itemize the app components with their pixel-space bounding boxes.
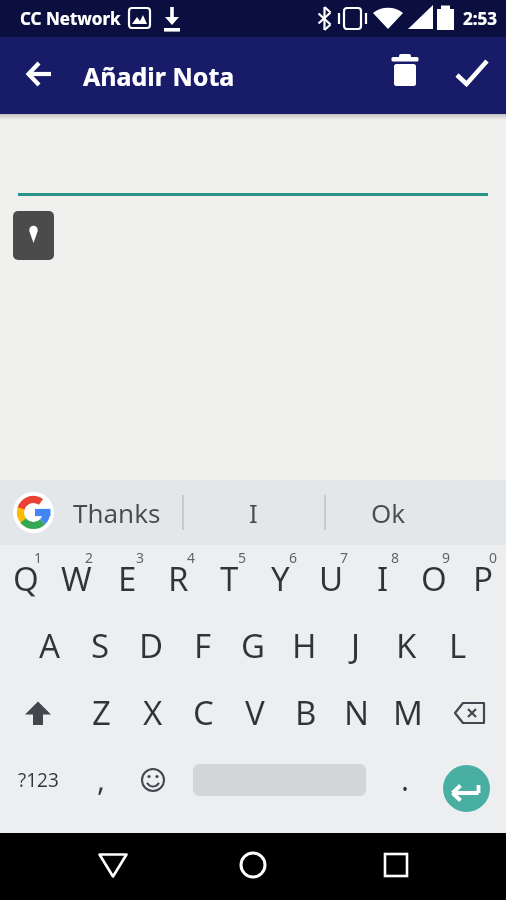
button[interactable]: Thanks (57, 480, 177, 545)
staticText: 6 (289, 548, 298, 567)
staticText: CC Network (20, 7, 121, 30)
button[interactable]: Z (76, 679, 127, 746)
button[interactable] (178, 746, 380, 813)
button[interactable]: , (76, 746, 127, 813)
staticText: Y (271, 556, 290, 601)
staticText: X (143, 690, 163, 735)
button[interactable] (127, 746, 178, 813)
staticText: V (245, 690, 265, 735)
button[interactable]: . (380, 746, 431, 813)
staticText: N (344, 690, 370, 735)
button[interactable]: T (204, 545, 255, 612)
staticText: Thanks (73, 495, 161, 530)
button[interactable]: F (177, 612, 228, 679)
staticText: W (61, 556, 92, 601)
staticText: 3 (136, 548, 145, 567)
staticText: T (220, 556, 239, 601)
staticText: 5 (238, 548, 247, 567)
staticText: E (118, 556, 137, 601)
button[interactable] (450, 52, 494, 96)
button[interactable]: M (382, 679, 433, 746)
staticText: ?123 (18, 767, 59, 793)
staticText: Z (92, 690, 111, 735)
staticText: 2 (85, 548, 94, 567)
staticText: C (193, 690, 214, 735)
button[interactable]: H (279, 612, 330, 679)
staticText: I (377, 556, 389, 601)
staticText: L (449, 623, 467, 668)
staticText: P (473, 556, 493, 601)
button[interactable]: N (331, 679, 382, 746)
staticText: 4 (187, 548, 196, 567)
button[interactable]: D (126, 612, 177, 679)
staticText: O (421, 556, 447, 601)
button[interactable] (433, 679, 506, 746)
button[interactable]: ?123 (0, 746, 76, 813)
button[interactable]: R (153, 545, 204, 612)
staticText: J (351, 623, 361, 668)
button[interactable] (372, 841, 420, 889)
button[interactable]: B (280, 679, 331, 746)
staticText: I (249, 495, 258, 530)
button[interactable] (431, 746, 506, 813)
staticText: D (139, 623, 164, 668)
staticText: R (168, 556, 189, 601)
staticText: M (393, 690, 423, 735)
button[interactable] (383, 52, 427, 96)
button[interactable]: C (178, 679, 229, 746)
button[interactable]: I (357, 545, 408, 612)
button[interactable]: J (330, 612, 381, 679)
button[interactable]: X (127, 679, 178, 746)
staticText: H (292, 623, 317, 668)
button[interactable]: Ok (328, 480, 448, 545)
button[interactable]: L (432, 612, 483, 679)
button[interactable]: I (193, 480, 313, 545)
button[interactable]: E (102, 545, 153, 612)
button[interactable] (89, 841, 137, 889)
button[interactable]: K (381, 612, 432, 679)
staticText: 2:53 (463, 7, 497, 30)
button[interactable]: Q (0, 545, 51, 612)
staticText: S (91, 623, 110, 668)
button[interactable]: O (408, 545, 459, 612)
button[interactable] (229, 841, 277, 889)
staticText: B (295, 690, 317, 735)
button[interactable]: U (306, 545, 357, 612)
button[interactable]: Y (255, 545, 306, 612)
staticText: Ok (371, 495, 406, 530)
button[interactable] (0, 679, 76, 746)
button[interactable]: P (459, 545, 506, 612)
staticText: , (97, 759, 106, 800)
staticText: 9 (442, 548, 451, 567)
staticText: 7 (340, 548, 349, 567)
staticText: A (39, 623, 61, 668)
button[interactable]: V (229, 679, 280, 746)
button[interactable] (13, 211, 54, 260)
staticText: 0 (489, 548, 498, 567)
staticText: G (241, 623, 266, 668)
staticText: Q (13, 556, 39, 601)
button[interactable] (13, 492, 54, 533)
staticText: F (194, 623, 212, 668)
staticText: U (319, 556, 344, 601)
staticText: Añadir Nota (83, 59, 235, 93)
button[interactable]: S (75, 612, 126, 679)
staticText: K (396, 623, 417, 668)
staticText: 1 (34, 548, 43, 567)
button[interactable]: G (228, 612, 279, 679)
staticText: . (401, 759, 410, 800)
staticText: 8 (391, 548, 400, 567)
button[interactable]: A (24, 612, 75, 679)
button[interactable]: W (51, 545, 102, 612)
button[interactable] (18, 52, 62, 96)
